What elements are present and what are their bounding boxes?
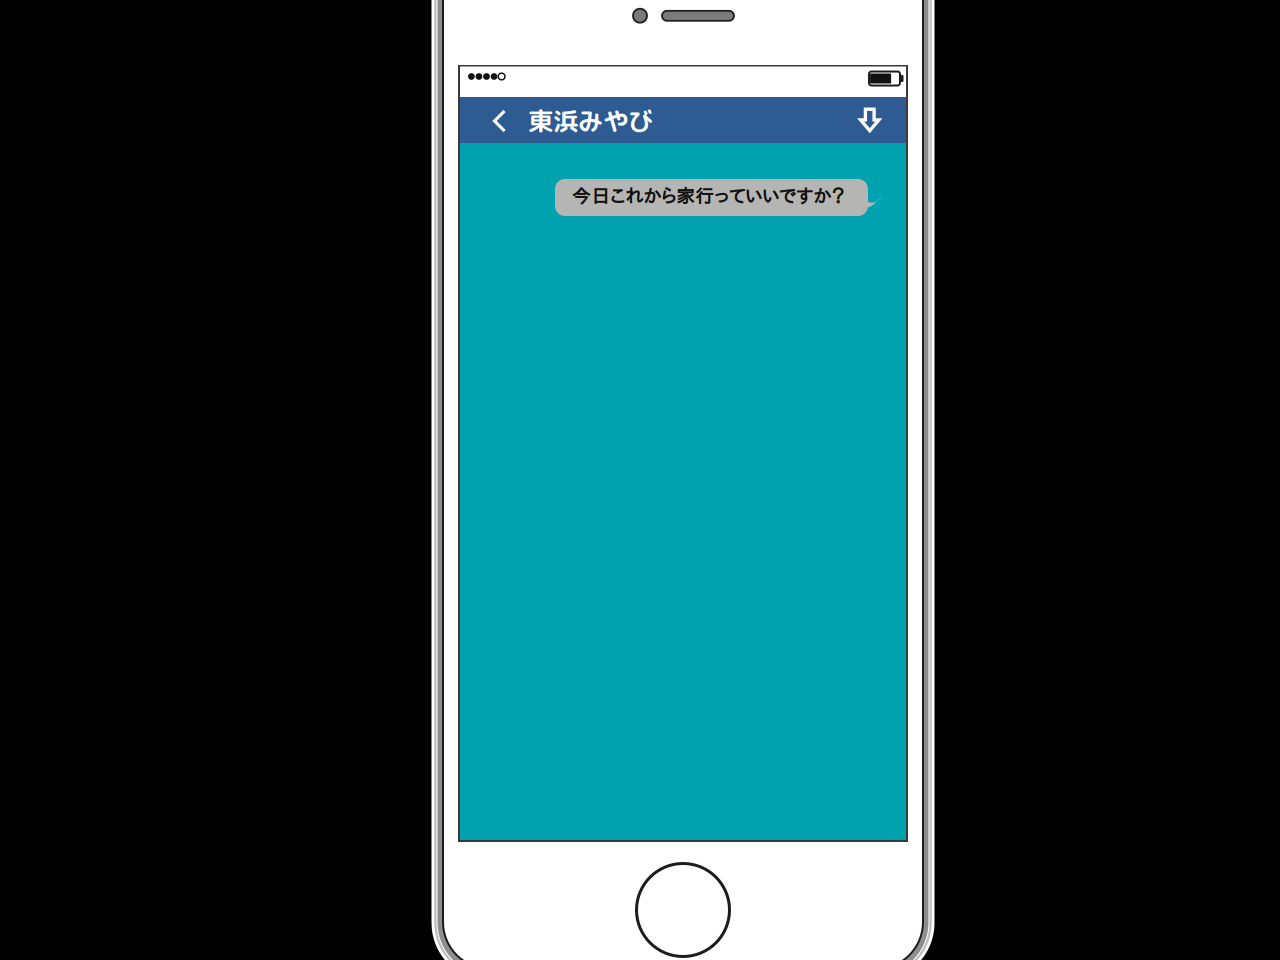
staticText: 東浜みやび	[528, 103, 653, 139]
button[interactable]: 東浜みやび	[528, 98, 664, 144]
staticText: 今日これから家行っていいですか？	[572, 187, 844, 205]
button[interactable]: Back	[479, 98, 521, 144]
button[interactable]: Download	[848, 97, 892, 143]
button[interactable]: 今日これから家行っていいですか？	[555, 179, 868, 216]
